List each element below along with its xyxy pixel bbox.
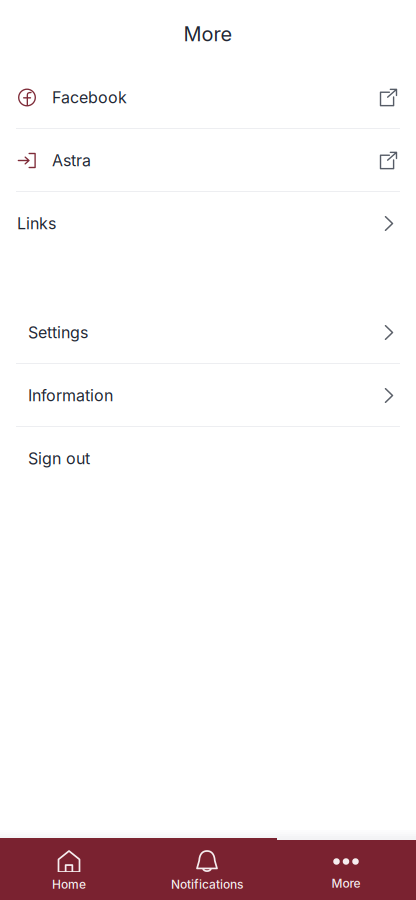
button[interactable]: Settings	[0, 301, 416, 364]
staticText: Links	[17, 214, 56, 233]
staticText: More	[331, 876, 360, 890]
staticText: Information	[28, 386, 113, 405]
staticText: Home	[52, 877, 86, 891]
staticText: Sign out	[28, 449, 90, 468]
staticText: Notifications	[171, 877, 243, 891]
staticText: Astra	[52, 151, 91, 170]
staticText: More	[183, 22, 232, 46]
button[interactable]: Information	[0, 364, 416, 427]
button[interactable]: Notifications	[138, 840, 276, 900]
button[interactable]: Links	[0, 192, 416, 255]
button[interactable]: Astra	[0, 129, 416, 192]
staticText: Facebook	[52, 88, 127, 107]
button[interactable]: Home	[0, 840, 138, 900]
button[interactable]: Sign out	[0, 427, 416, 490]
button[interactable]: More	[276, 840, 416, 900]
staticText: Settings	[28, 323, 88, 342]
button[interactable]: Facebook	[0, 66, 416, 129]
